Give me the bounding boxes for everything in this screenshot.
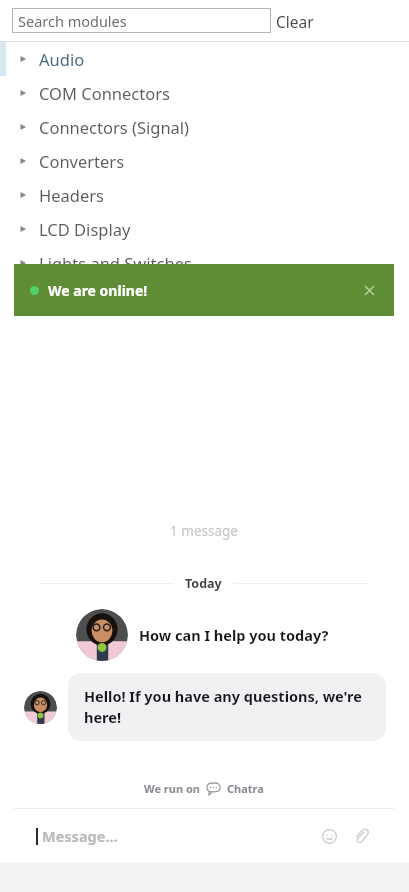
button[interactable]: We run on xyxy=(14,781,394,796)
staticText: Today xyxy=(185,575,222,592)
button[interactable]: Hello! If you have any questions, we're … xyxy=(68,673,386,741)
button[interactable]: Attach file xyxy=(346,821,376,851)
button[interactable]: Close chat xyxy=(356,277,382,303)
button[interactable]: LCD Display xyxy=(0,212,409,246)
button[interactable]: Clear xyxy=(276,0,314,42)
staticText: Headers xyxy=(39,184,104,206)
staticText: Hello! If you have any questions, we're … xyxy=(84,686,370,728)
staticText: Connectors (Signal) xyxy=(39,116,190,138)
staticText: Message... xyxy=(42,826,118,846)
staticText: COM Connectors xyxy=(39,82,170,104)
button[interactable]: Message... xyxy=(14,809,394,863)
staticText: Clear xyxy=(276,11,314,32)
staticText: We are online! xyxy=(48,281,148,300)
staticText: How can I help you today? xyxy=(139,625,329,645)
staticText: We run on xyxy=(144,781,200,796)
staticText: Lights and Switches xyxy=(39,252,192,274)
staticText: 1 message xyxy=(14,522,394,540)
button[interactable]: COM Connectors xyxy=(0,76,409,110)
button[interactable]: Insert emoji xyxy=(314,821,344,851)
staticText: Search modules xyxy=(18,11,127,31)
staticText: LCD Display xyxy=(39,218,131,240)
button[interactable]: Converters xyxy=(0,144,409,178)
button[interactable]: We are online! xyxy=(14,264,394,316)
staticText: Audio xyxy=(39,48,85,70)
staticText: Converters xyxy=(39,150,125,172)
button[interactable]: Headers xyxy=(0,178,409,212)
button[interactable]: Audio xyxy=(0,42,409,76)
button[interactable]: Search modules xyxy=(12,8,271,33)
staticText: Chatra xyxy=(227,781,264,796)
button[interactable]: Lights and Switches xyxy=(0,246,409,280)
button[interactable]: Connectors (Signal) xyxy=(0,110,409,144)
